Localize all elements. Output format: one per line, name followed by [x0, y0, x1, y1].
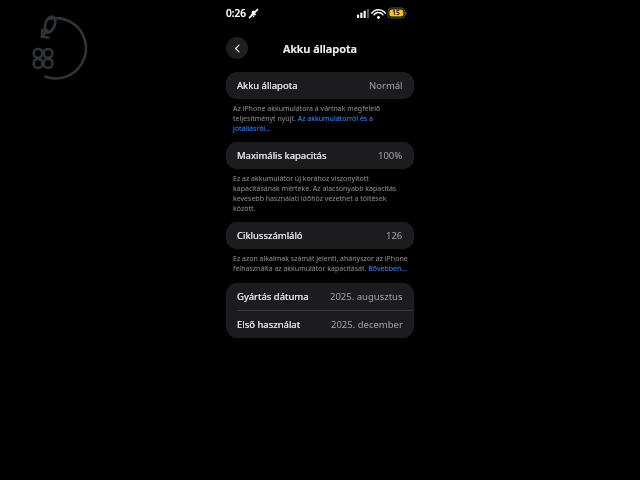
staticText: Ciklusszámláló	[237, 229, 303, 242]
staticText: 126	[386, 229, 403, 242]
staticText: 0:26	[226, 6, 246, 20]
staticText: 100%	[378, 149, 403, 162]
button[interactable]: Gyártás dátuma	[226, 283, 414, 310]
button[interactable]: Első használat	[226, 311, 414, 338]
staticText: Maximális kapacitás	[237, 149, 327, 162]
staticText: Normál	[369, 79, 403, 92]
staticText: 2025. augusztus	[330, 290, 403, 303]
button[interactable]: Maximális kapacitás	[226, 142, 414, 169]
staticText: 15	[392, 8, 401, 18]
staticText: Akku állapota	[237, 79, 298, 92]
staticText: Első használat	[237, 318, 301, 331]
staticText: 2025. december	[331, 318, 403, 331]
button[interactable]: Akku állapota	[226, 72, 414, 99]
button[interactable]: Vissza	[226, 37, 248, 59]
button[interactable]: Ciklusszámláló	[226, 222, 414, 249]
staticText: Az iPhone akkumulátora a vártnak megfele…	[233, 104, 409, 134]
staticText: Gyártás dátuma	[237, 290, 309, 303]
staticText: Ez az akkumulátor új korához viszonyítot…	[233, 174, 409, 214]
staticText: Ez azon alkalmak számát jelenti, ahánysz…	[233, 254, 409, 274]
staticText: Akku állapota	[283, 41, 357, 56]
